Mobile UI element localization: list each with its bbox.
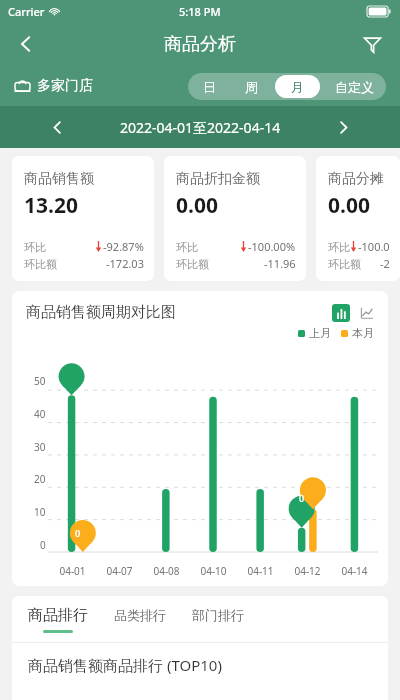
button[interactable]: 商品排行 — [28, 606, 88, 633]
staticText: 50 — [34, 374, 46, 388]
staticText: 20 — [34, 472, 46, 486]
staticText: 环比 — [328, 240, 350, 254]
staticText: 多家门店 — [37, 77, 93, 95]
staticText: 商品折扣金额 — [176, 170, 260, 188]
staticText: 13.20 — [24, 191, 78, 220]
button[interactable]: 日 — [190, 75, 228, 98]
button[interactable]: Back — [6, 24, 46, 64]
staticText: 环比额 — [176, 257, 209, 271]
button[interactable]: 商品销售额 — [12, 156, 154, 281]
staticText: -100.0 — [358, 239, 390, 254]
staticText: 0 — [40, 538, 46, 552]
staticText: 月 — [291, 79, 304, 95]
staticText: -172.03 — [106, 256, 144, 271]
staticText: 商品销售额商品排行 (TOP10) — [28, 655, 222, 675]
button[interactable]: Next period — [326, 110, 360, 144]
staticText: 本月 — [352, 326, 374, 340]
button[interactable]: 多家门店 — [14, 77, 93, 95]
staticText: 04-07 — [106, 564, 133, 578]
staticText: 04-08 — [153, 564, 180, 578]
staticText: -2 — [380, 256, 390, 271]
staticText: 04-14 — [341, 564, 368, 578]
staticText: -11.96 — [264, 256, 296, 271]
staticText: 10 — [34, 505, 46, 519]
staticText: 40 — [34, 407, 46, 421]
staticText: 周 — [245, 79, 258, 95]
staticText: 0.00 — [176, 191, 218, 220]
staticText: 04-12 — [294, 564, 321, 578]
button[interactable]: Bar chart — [332, 304, 350, 322]
button[interactable]: 商品分摊金额 — [316, 156, 400, 281]
staticText: 环比额 — [24, 257, 57, 271]
button[interactable]: Previous period — [40, 110, 74, 144]
staticText: 04-01 — [59, 564, 86, 578]
button[interactable]: 月 — [275, 75, 320, 98]
button[interactable]: 自定义 — [324, 75, 384, 98]
staticText: 04-11 — [247, 564, 274, 578]
staticText: Carrier — [8, 4, 45, 19]
staticText: 品类排行 — [114, 607, 166, 623]
staticText: 环比 — [176, 240, 198, 254]
staticText: 自定义 — [335, 79, 374, 95]
staticText: 商品分析 — [164, 33, 236, 56]
staticText: 上月 — [309, 326, 331, 340]
button[interactable]: Line chart — [358, 304, 376, 322]
staticText: 商品分摊金额 — [328, 170, 390, 188]
button[interactable]: 部门排行 — [192, 607, 244, 631]
staticText: 环比 — [24, 240, 46, 254]
staticText: 2022-04-01至2022-04-14 — [120, 118, 281, 137]
button[interactable]: Filter — [352, 24, 392, 64]
staticText: 环比额 — [328, 257, 361, 271]
staticText: 商品销售额 — [24, 170, 94, 188]
button[interactable]: 周 — [232, 75, 271, 98]
staticText: 商品销售额周期对比图 — [26, 303, 176, 322]
staticText: -100.00% — [248, 239, 296, 254]
staticText: 0 — [75, 527, 81, 539]
staticText: -92.87% — [103, 239, 144, 254]
staticText: 5:18 PM — [179, 4, 221, 19]
button[interactable]: 品类排行 — [114, 607, 166, 631]
staticText: 商品排行 — [28, 606, 88, 625]
staticText: 04-10 — [200, 564, 227, 578]
staticText: 日 — [203, 79, 216, 95]
staticText: 30 — [34, 440, 46, 454]
staticText: 0 — [299, 492, 305, 504]
staticText: 0.00 — [328, 191, 370, 220]
button[interactable]: 商品折扣金额 — [164, 156, 306, 281]
staticText: 部门排行 — [192, 607, 244, 623]
